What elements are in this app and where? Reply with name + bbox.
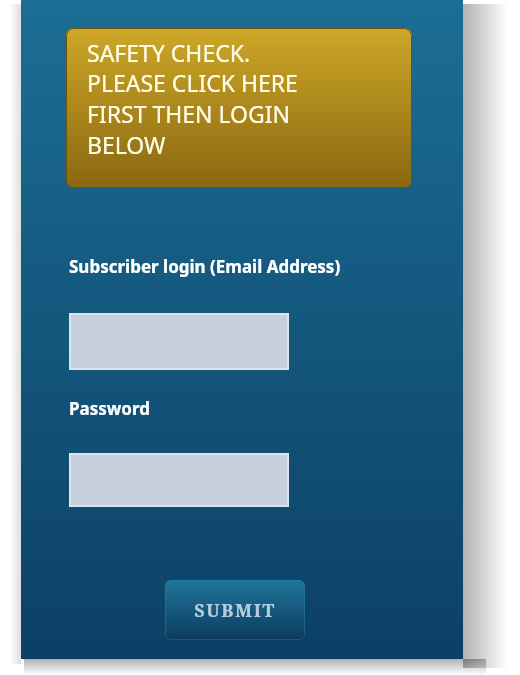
- button[interactable]: SUBMIT: [165, 580, 305, 640]
- button[interactable]: SAFETY CHECK. PLEASE CLICK HERE FIRST TH…: [66, 28, 412, 188]
- staticText: SAFETY CHECK. PLEASE CLICK HERE FIRST TH…: [87, 37, 298, 161]
- staticText: SUBMIT: [194, 598, 276, 623]
- staticText: Subscriber login (Email Address): [69, 255, 341, 278]
- staticText: Password: [69, 397, 150, 420]
